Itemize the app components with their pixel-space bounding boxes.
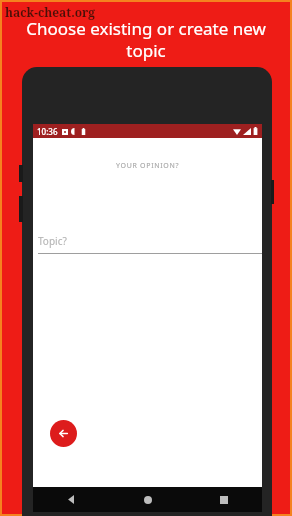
button[interactable]: Back bbox=[33, 487, 110, 512]
staticText: Choose existing or create new topic bbox=[8, 17, 284, 62]
button[interactable]: Home bbox=[110, 487, 186, 512]
button[interactable]: Back bbox=[50, 420, 77, 447]
button[interactable]: Recents bbox=[186, 487, 262, 512]
staticText: Topic? bbox=[38, 234, 67, 248]
staticText: hack-cheat.org bbox=[5, 4, 96, 20]
staticText: 10:36 bbox=[37, 126, 58, 137]
staticText: YOUR OPINION? bbox=[116, 161, 180, 171]
button[interactable]: Topic? bbox=[33, 234, 262, 254]
